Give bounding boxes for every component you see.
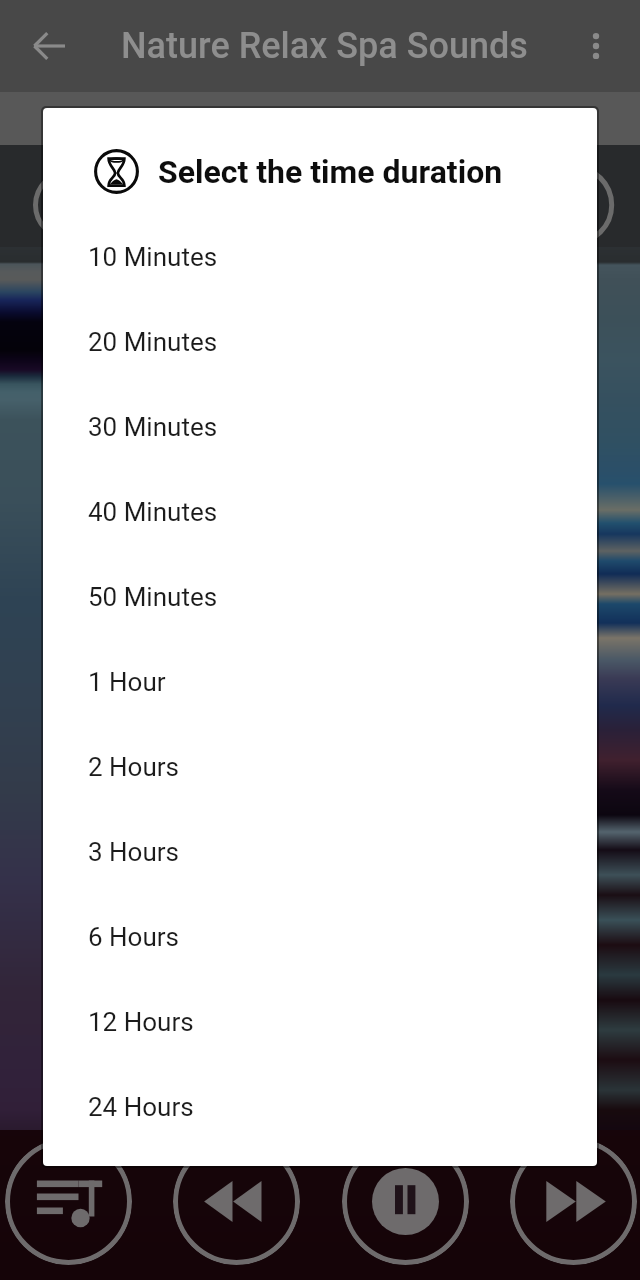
button[interactable]: 10 Minutes <box>43 214 597 299</box>
staticText: 1 Hour <box>88 667 166 697</box>
button[interactable]: Fast forward <box>510 1138 637 1265</box>
staticText: 12 Hours <box>88 1007 194 1037</box>
staticText: 40 Minutes <box>88 497 218 527</box>
button[interactable]: Rewind <box>173 1138 300 1265</box>
staticText: 10 Minutes <box>88 242 218 272</box>
staticText: 30 Minutes <box>88 412 218 442</box>
staticText: 50 Minutes <box>88 582 218 612</box>
button[interactable]: 40 Minutes <box>43 469 597 554</box>
button[interactable]: 6 Hours <box>43 894 597 979</box>
button[interactable]: 2 Hours <box>43 724 597 809</box>
button[interactable]: 24 Hours <box>43 1064 597 1149</box>
button[interactable]: 30 Minutes <box>43 384 597 469</box>
button[interactable]: 12 Hours <box>43 979 597 1064</box>
staticText: 3 Hours <box>88 837 179 867</box>
button[interactable]: Pause <box>342 1138 469 1265</box>
staticText: 24 Hours <box>88 1092 194 1122</box>
button[interactable]: 3 Hours <box>43 809 597 894</box>
button[interactable]: Back <box>21 18 77 74</box>
button[interactable]: 50 Minutes <box>43 554 597 639</box>
staticText: Nature Relax Spa Sounds <box>121 25 528 67</box>
button[interactable]: More options <box>568 18 624 74</box>
staticText: 6 Hours <box>88 922 179 952</box>
staticText: 2 Hours <box>88 752 179 782</box>
staticText: Select the time duration <box>158 153 503 191</box>
button[interactable]: Playlist <box>5 1138 132 1265</box>
staticText: 20 Minutes <box>88 327 218 357</box>
button[interactable]: 20 Minutes <box>43 299 597 384</box>
button[interactable]: 1 Hour <box>43 639 597 724</box>
